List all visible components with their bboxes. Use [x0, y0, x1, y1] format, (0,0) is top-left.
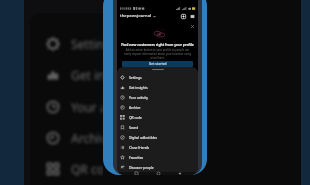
button[interactable]: Menu — [189, 13, 195, 19]
staticText: Add an action button to your profile so … — [123, 48, 192, 60]
staticText: Archive — [129, 105, 141, 109]
button[interactable]: Settings — [117, 72, 198, 82]
staticText: Settings — [71, 36, 103, 52]
staticText: Discover people — [129, 165, 154, 169]
button[interactable]: Get insights — [46, 59, 103, 90]
button[interactable]: Archive — [117, 102, 198, 112]
button[interactable]: Home — [155, 172, 161, 175]
staticText: Your activity — [71, 99, 103, 115]
staticText: thepawsjournal — [120, 13, 152, 19]
staticText: Digital collectibles — [129, 135, 157, 139]
button[interactable]: Close friends — [117, 142, 198, 152]
button[interactable]: New post — [180, 13, 186, 19]
staticText: Get insights — [129, 85, 148, 89]
button[interactable]: Settings — [46, 28, 103, 59]
button[interactable]: QR code — [46, 153, 103, 184]
button[interactable]: Favorites — [117, 152, 198, 162]
staticText: QR code — [71, 161, 103, 177]
button[interactable]: Your activity — [117, 92, 198, 102]
staticText: Favorites — [129, 155, 144, 159]
button[interactable]: Recents — [133, 172, 139, 175]
staticText: Get insights — [71, 67, 103, 83]
button[interactable]: Saved — [117, 122, 198, 132]
staticText: Find new customers right from your profi… — [121, 42, 194, 47]
button[interactable]: Back — [176, 172, 182, 175]
button[interactable]: Get started — [122, 61, 193, 67]
staticText: Get started — [149, 62, 167, 66]
staticText: Settings — [129, 75, 142, 79]
staticText: Close friends — [129, 145, 150, 149]
staticText: Archive — [71, 130, 103, 146]
button[interactable]: Get insights — [117, 82, 198, 92]
button[interactable]: Archive — [46, 122, 103, 153]
staticText: QR code — [129, 115, 142, 119]
staticText: Your activity — [129, 95, 148, 99]
button[interactable]: QR code — [117, 112, 198, 122]
button[interactable]: Digital collectibles — [117, 132, 198, 142]
staticText: Saved — [129, 125, 139, 129]
button[interactable]: Close — [190, 24, 195, 29]
button[interactable]: Your activity — [46, 91, 103, 122]
button[interactable]: Discover people — [117, 162, 198, 172]
